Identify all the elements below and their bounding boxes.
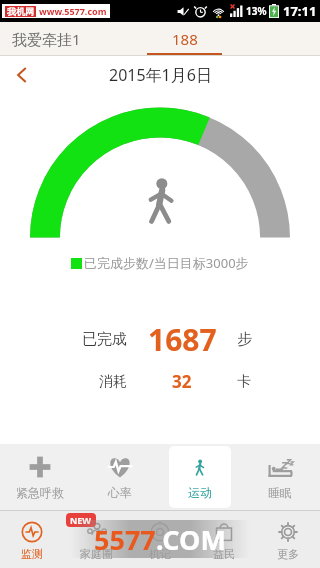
staticText: 32 bbox=[172, 370, 192, 393]
staticText: 1687 bbox=[148, 319, 217, 360]
button[interactable]: 监测 bbox=[0, 510, 64, 568]
staticText: 监测 bbox=[21, 547, 43, 561]
staticText: NEW bbox=[70, 514, 92, 526]
staticText: www.5577.com bbox=[39, 5, 107, 17]
staticText: 步 bbox=[237, 330, 252, 349]
staticText: 13% bbox=[246, 4, 267, 18]
staticText: 已完成步数/当日目标3000步 bbox=[84, 254, 249, 272]
staticText: 消耗 bbox=[99, 373, 127, 391]
staticText: 2015年1月6日 bbox=[109, 64, 212, 86]
staticText: 17:11 bbox=[283, 2, 317, 20]
staticText: 卡 bbox=[237, 373, 251, 391]
button[interactable]: 机记 bbox=[128, 510, 192, 568]
button[interactable]: Back bbox=[0, 56, 44, 94]
staticText: 机记 bbox=[149, 547, 171, 561]
button[interactable]: 家庭圈 bbox=[64, 510, 128, 568]
staticText: 已完成 bbox=[82, 330, 127, 349]
staticText: 益民 bbox=[213, 547, 235, 561]
staticText: 更多 bbox=[277, 547, 299, 561]
staticText: 睡眠 bbox=[268, 485, 292, 500]
staticText: .COM bbox=[156, 521, 226, 558]
button[interactable]: 188 bbox=[123, 22, 246, 56]
button[interactable]: 益民 bbox=[192, 510, 256, 568]
staticText: 运动 bbox=[188, 485, 212, 500]
button[interactable]: 我爱牵挂1 bbox=[0, 22, 123, 56]
staticText: 我机网 bbox=[7, 6, 34, 17]
staticText: 紧急呼救 bbox=[16, 485, 64, 500]
staticText: 188 bbox=[172, 29, 198, 49]
staticText: 5577 bbox=[94, 521, 156, 558]
staticText: 家庭圈 bbox=[80, 547, 113, 561]
staticText: 心率 bbox=[108, 485, 132, 500]
button[interactable]: 更多 bbox=[256, 510, 320, 568]
button[interactable]: 心率 bbox=[89, 446, 151, 508]
staticText: 我爱牵挂1 bbox=[12, 29, 81, 49]
button[interactable]: 运动 bbox=[169, 446, 231, 508]
button[interactable]: 睡眠 bbox=[249, 446, 311, 508]
button[interactable]: 紧急呼救 bbox=[9, 446, 71, 508]
